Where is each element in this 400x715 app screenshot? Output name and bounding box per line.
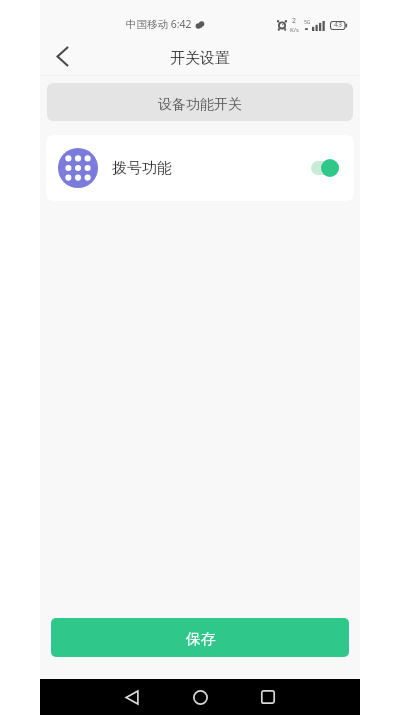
button[interactable]: Recents xyxy=(250,679,286,715)
staticText: 中国移动 6:42 xyxy=(126,17,192,31)
button[interactable]: 拨号功能 xyxy=(46,135,354,201)
staticText: 2 xyxy=(292,16,297,26)
staticText: 开关设置 xyxy=(170,49,230,68)
button[interactable]: 保存 xyxy=(51,618,349,657)
staticText: 设备功能开关 xyxy=(158,96,242,114)
staticText: 拨号功能 xyxy=(112,159,172,178)
staticText: 5G xyxy=(304,19,311,26)
button[interactable]: Back xyxy=(114,679,150,715)
staticText: K/s xyxy=(290,26,299,34)
button[interactable]: Home xyxy=(182,679,218,715)
staticText: 保存 xyxy=(186,630,216,649)
button[interactable]: Back xyxy=(40,38,84,75)
button[interactable]: Toggle dial function xyxy=(311,159,339,177)
staticText: 43 xyxy=(334,20,343,30)
